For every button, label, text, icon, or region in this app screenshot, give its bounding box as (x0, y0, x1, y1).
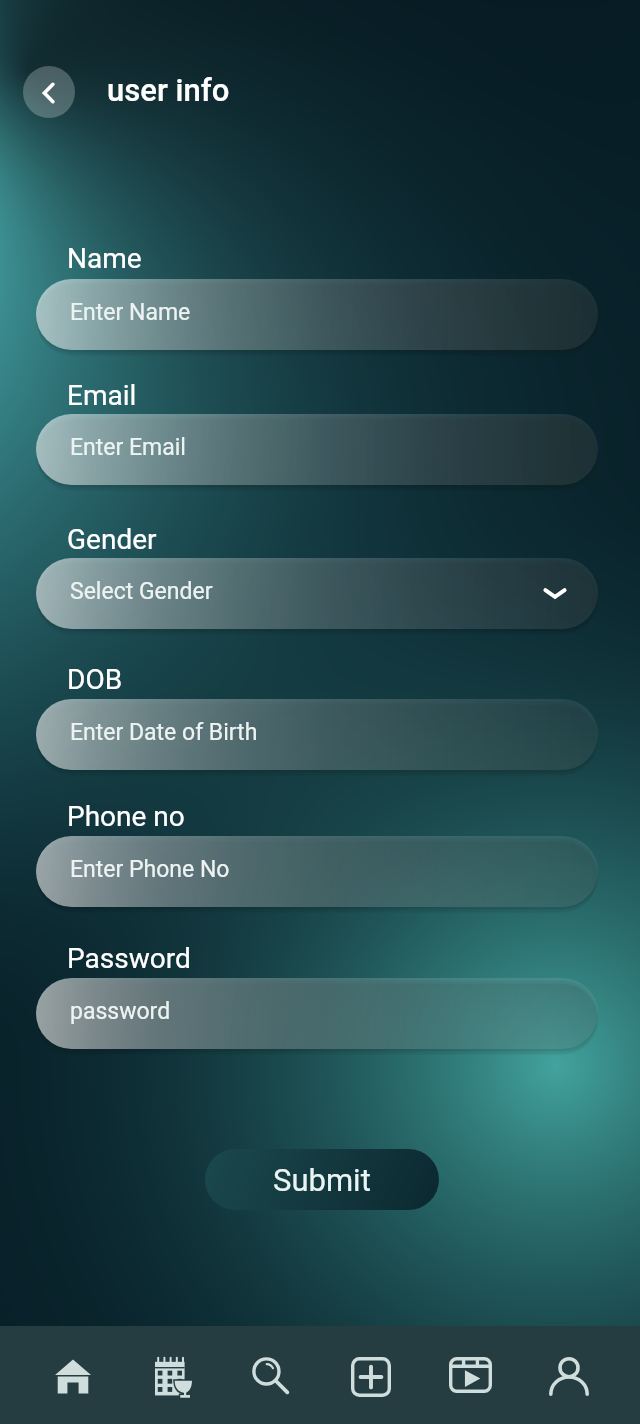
button[interactable]: Enter Date of Birth (36, 699, 598, 770)
button[interactable]: Select Gender (36, 558, 598, 629)
button[interactable]: Enter Email (36, 414, 598, 485)
button[interactable]: Search (235, 1332, 307, 1418)
button[interactable]: password (36, 978, 598, 1049)
staticText: Phone no (67, 800, 185, 833)
staticText: Email (67, 379, 137, 412)
staticText: user info (107, 72, 230, 108)
staticText: Password (67, 942, 191, 975)
staticText: Enter Name (70, 299, 191, 326)
button[interactable]: Create post (335, 1332, 407, 1418)
button[interactable]: Back (23, 66, 75, 118)
button[interactable]: Events (136, 1332, 208, 1418)
staticText: Enter Email (70, 434, 186, 461)
staticText: Enter Date of Birth (70, 719, 258, 746)
staticText: DOB (67, 663, 123, 696)
button[interactable]: Home (37, 1332, 109, 1418)
staticText: password (70, 998, 171, 1025)
button[interactable]: Profile (533, 1332, 605, 1418)
staticText: Name (67, 242, 142, 275)
button[interactable]: Videos (434, 1332, 506, 1418)
staticText: Gender (67, 523, 157, 556)
button[interactable]: Enter Name (36, 279, 598, 350)
staticText: Submit (273, 1162, 371, 1198)
button[interactable]: Enter Phone No (36, 836, 598, 907)
staticText: Enter Phone No (70, 856, 230, 883)
staticText: Select Gender (70, 578, 213, 605)
button[interactable]: Submit (205, 1149, 439, 1210)
